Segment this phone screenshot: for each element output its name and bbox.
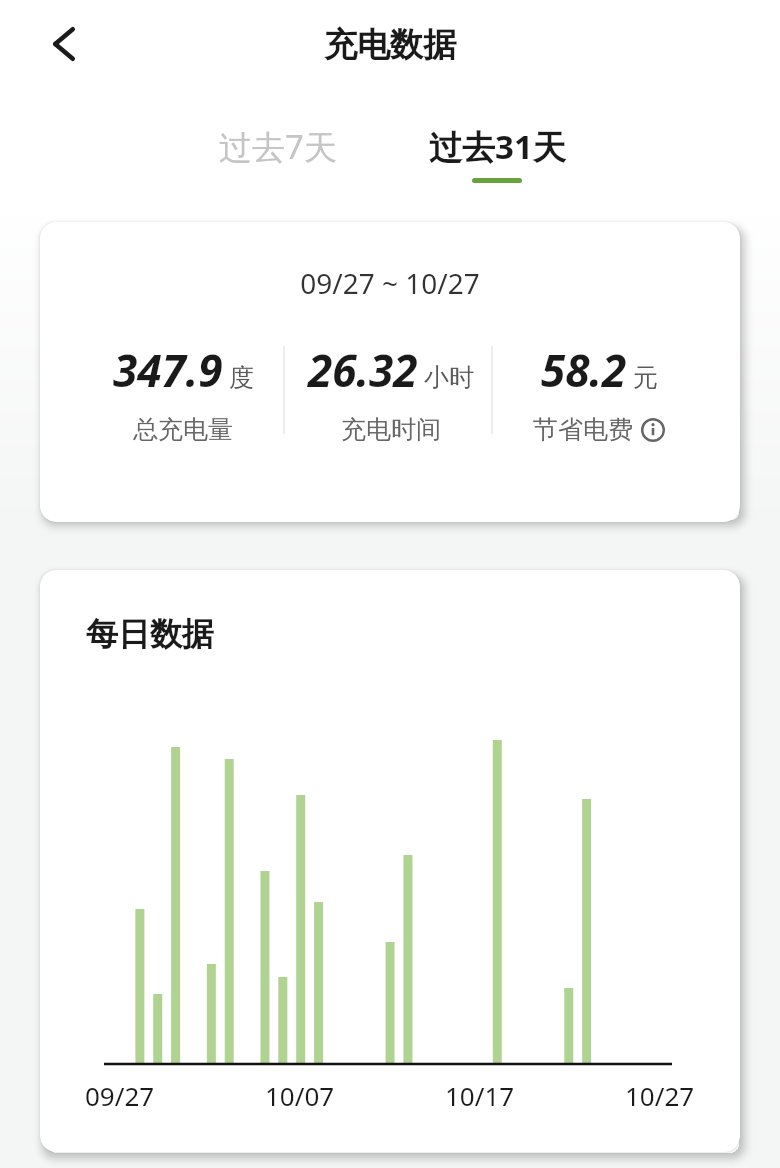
staticText: 09/27 ~ 10/27: [40, 264, 740, 302]
button[interactable]: 过去7天: [200, 123, 355, 169]
button[interactable]: 58.2: [469, 340, 729, 445]
staticText: 小时: [424, 362, 474, 393]
staticText: 度: [229, 362, 254, 393]
staticText: 10/27: [625, 1078, 695, 1113]
staticText: 过去7天: [219, 124, 337, 169]
staticText: 10/17: [445, 1078, 515, 1113]
staticText: 节省电费: [533, 414, 633, 445]
staticText: 充电数据: [0, 24, 780, 66]
staticText: 26.32: [308, 340, 418, 400]
staticText: 充电时间: [341, 414, 441, 445]
staticText: 58.2: [541, 340, 627, 400]
button[interactable]: 347.9: [53, 340, 313, 445]
staticText: 每日数据: [86, 614, 214, 654]
staticText: 总充电量: [133, 414, 233, 445]
staticText: 元: [633, 362, 658, 393]
staticText: 09/27: [85, 1078, 155, 1113]
button[interactable]: [40, 20, 88, 68]
staticText: 10/07: [265, 1078, 335, 1113]
staticText: 过去31天: [429, 124, 566, 169]
staticText: 347.9: [113, 340, 223, 400]
button[interactable]: 26.32: [261, 340, 521, 445]
button[interactable]: 过去31天: [422, 124, 572, 183]
